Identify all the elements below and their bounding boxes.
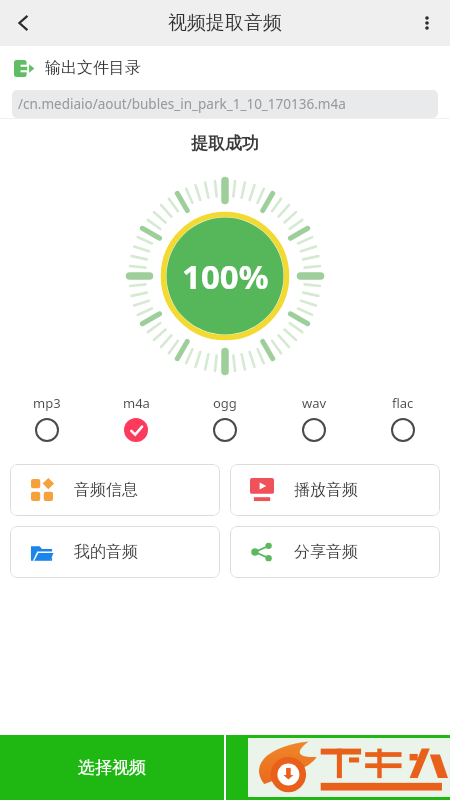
staticText: ogg	[213, 394, 237, 412]
button[interactable]: ogg	[196, 392, 254, 444]
staticText: 我的音频	[74, 542, 138, 562]
button[interactable]: mp3	[18, 392, 76, 444]
button[interactable]: 输出文件目录	[0, 46, 450, 90]
staticText: /cn.mediaio/aout/bubles_in_park_1_10_170…	[18, 95, 346, 113]
button[interactable]: 分享音频	[230, 526, 440, 578]
staticText: 选择视频	[78, 757, 146, 778]
button[interactable]: 选择视频	[0, 735, 224, 800]
button[interactable]: flac	[374, 392, 432, 444]
button[interactable]: 我的音频	[10, 526, 220, 578]
staticText: m4a	[123, 394, 150, 412]
button[interactable]	[226, 735, 450, 800]
staticText: 音频信息	[74, 480, 138, 500]
button[interactable]: 播放音频	[230, 464, 440, 516]
staticText: 输出文件目录	[45, 58, 141, 78]
staticText: flac	[392, 394, 414, 412]
staticText: mp3	[33, 394, 61, 412]
button[interactable]: Back	[0, 0, 46, 46]
staticText: 视频提取音频	[168, 11, 282, 35]
staticText: wav	[302, 394, 327, 412]
staticText: 提取成功	[191, 133, 259, 154]
button[interactable]: 音频信息	[10, 464, 220, 516]
button[interactable]: More options	[404, 0, 450, 46]
staticText: 100%	[182, 254, 269, 299]
staticText: 分享音频	[294, 542, 358, 562]
staticText: 播放音频	[294, 480, 358, 500]
button[interactable]: wav	[285, 392, 343, 444]
button[interactable]: /cn.mediaio/aout/bubles_in_park_1_10_170…	[12, 90, 438, 118]
button[interactable]: m4a	[107, 392, 165, 444]
